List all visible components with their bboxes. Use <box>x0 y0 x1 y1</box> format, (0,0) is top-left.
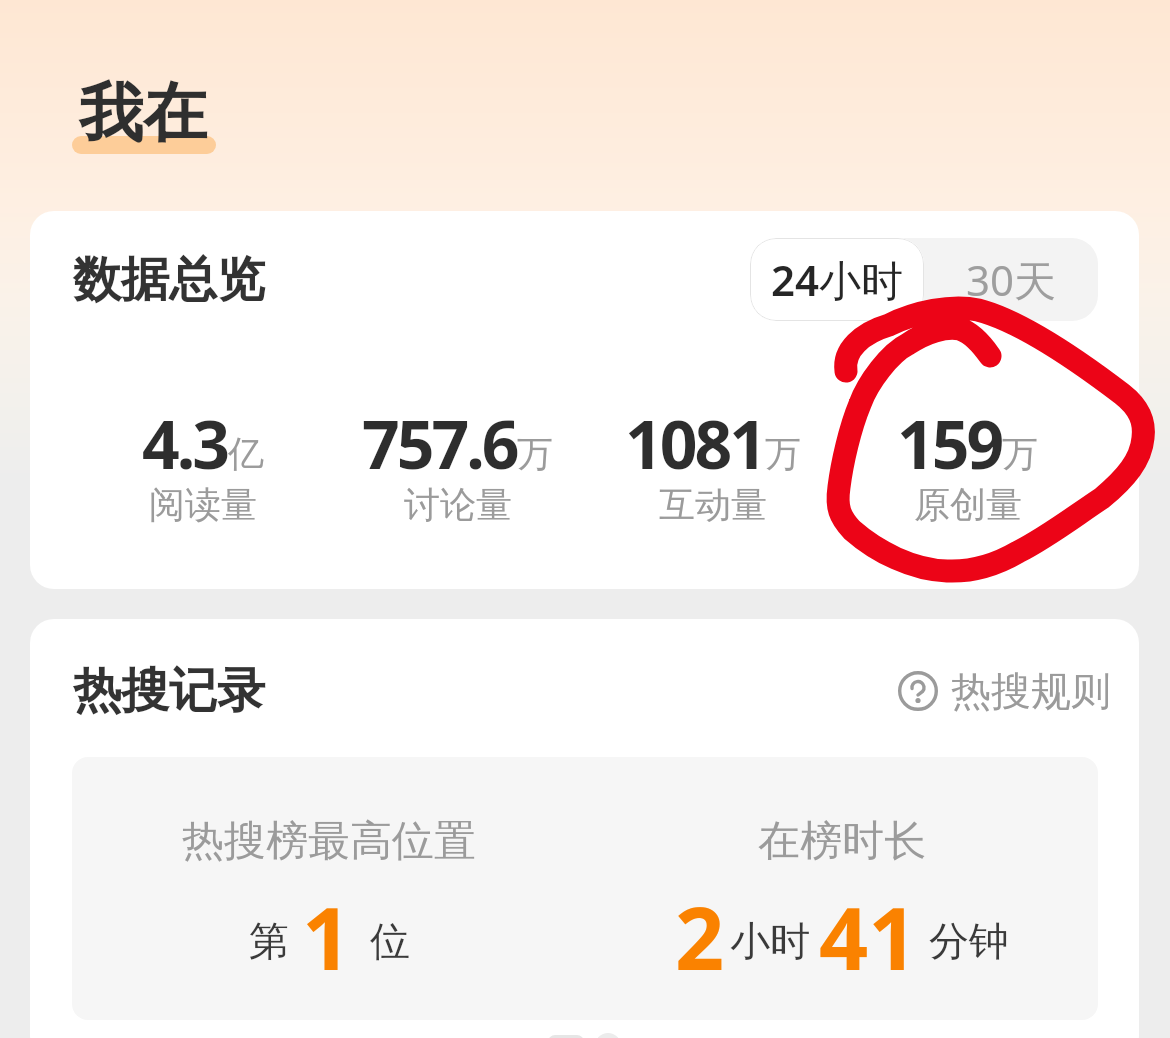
staticText: 位 <box>370 916 410 966</box>
button[interactable]: 24小时 <box>750 238 924 321</box>
staticText: 1 <box>302 878 352 995</box>
staticText: 小时 <box>730 916 810 966</box>
staticText: 30天 <box>966 251 1057 308</box>
staticText: 分钟 <box>929 916 1009 966</box>
staticText: 热搜记录 <box>73 661 265 721</box>
staticText: 原创量 <box>914 482 1022 527</box>
staticText: 757.6 <box>362 398 517 488</box>
staticText: 阅读量 <box>149 482 257 527</box>
staticText: 热搜规则 <box>951 666 1111 716</box>
staticText: 亿 <box>228 431 264 476</box>
button[interactable]: 热搜规则 <box>898 666 1111 716</box>
staticText: 万 <box>765 431 801 476</box>
staticText: 24小时 <box>771 251 904 308</box>
button[interactable]: 757.6 <box>330 398 585 533</box>
button[interactable] <box>30 1033 1139 1038</box>
staticText: 我在 <box>79 73 207 154</box>
staticText: 2 <box>675 878 725 995</box>
staticText: 第 <box>249 916 289 966</box>
button[interactable]: 159 <box>840 398 1095 533</box>
staticText: 4.3 <box>142 398 228 488</box>
button[interactable]: 30天 <box>924 238 1098 321</box>
staticText: 数据总览 <box>73 250 265 310</box>
button[interactable]: 1081 <box>585 398 840 533</box>
staticText: 1081 <box>625 398 765 488</box>
staticText: 讨论量 <box>404 482 512 527</box>
other: 热搜规则 <box>898 671 938 711</box>
staticText: 41 <box>819 878 918 995</box>
staticText: 在榜时长 <box>758 815 926 868</box>
staticText: 159 <box>897 398 1002 488</box>
button[interactable]: 4.3 <box>75 398 330 533</box>
staticText: 万 <box>1002 431 1038 476</box>
staticText: 万 <box>517 431 553 476</box>
staticText: 互动量 <box>659 482 767 527</box>
staticText: 热搜榜最高位置 <box>182 815 476 868</box>
